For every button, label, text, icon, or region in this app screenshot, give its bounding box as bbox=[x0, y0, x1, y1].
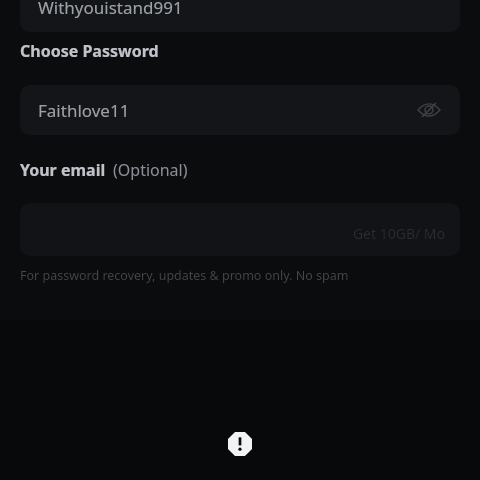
staticText: Faithlove11 bbox=[38, 99, 130, 122]
staticText: (Optional) bbox=[113, 159, 188, 181]
button[interactable]: Withyouistand991 bbox=[20, 0, 460, 32]
staticText: Your email bbox=[20, 159, 106, 181]
staticText: Get 10GB/ Mo bbox=[352, 224, 445, 243]
staticText: Withyouistand991 bbox=[38, 0, 183, 19]
staticText: Choose Password bbox=[20, 40, 159, 62]
button[interactable]: Show password bbox=[414, 95, 444, 125]
staticText: For password recovery, updates & promo o… bbox=[20, 267, 349, 284]
button[interactable]: Faithlove11 bbox=[20, 85, 460, 135]
button[interactable]: Warning bbox=[222, 426, 258, 462]
